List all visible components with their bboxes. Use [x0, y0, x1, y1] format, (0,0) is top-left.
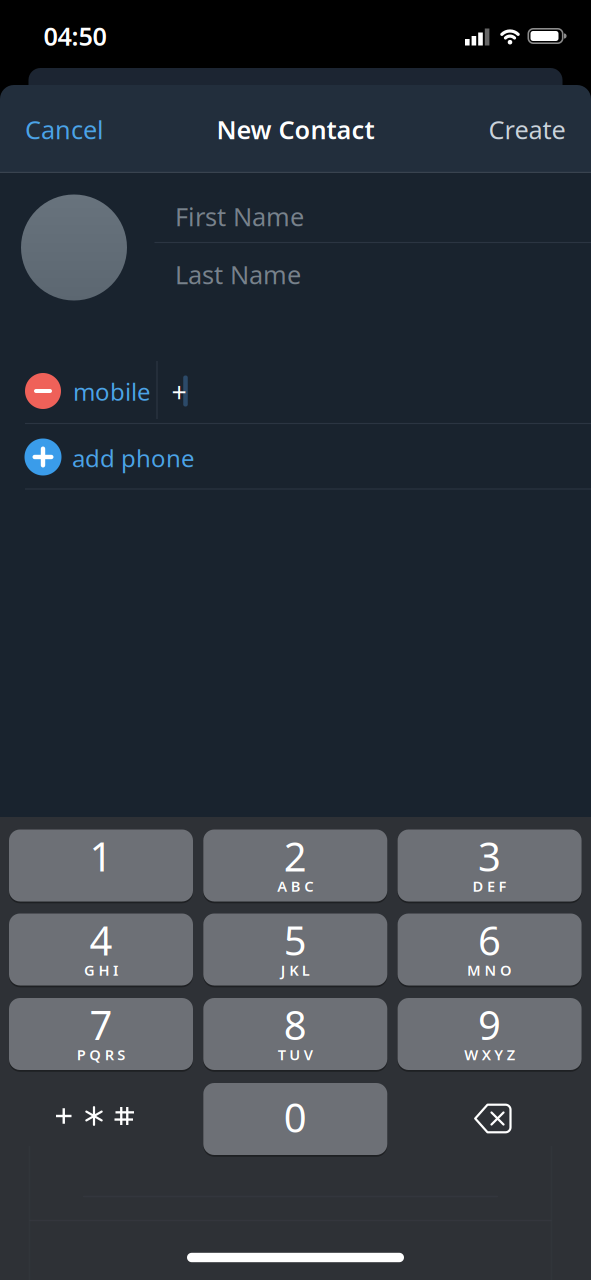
staticText: 5 [284, 913, 307, 966]
button[interactable]: 8 [203, 998, 387, 1072]
staticText: New Contact [216, 113, 374, 146]
staticText: 7 [89, 998, 112, 1051]
button[interactable]: add phone [0, 424, 591, 489]
button[interactable]: 9 [398, 998, 582, 1072]
staticText: 1 [89, 829, 112, 882]
staticText: GHI [84, 960, 118, 980]
staticText: Last Name [175, 258, 301, 291]
staticText: DEF [473, 876, 507, 896]
button[interactable]: Last Name [175, 241, 591, 307]
staticText: First Name [175, 200, 304, 233]
staticText: Cancel [25, 113, 104, 146]
button[interactable]: First Name [175, 182, 591, 250]
staticText: 8 [284, 998, 307, 1051]
button[interactable]: Create [445, 107, 565, 151]
staticText: + [171, 374, 186, 410]
staticText: 4 [89, 913, 112, 966]
staticText: 2 [284, 829, 307, 882]
staticText: Create [488, 113, 565, 146]
button[interactable]: 3 [398, 829, 582, 903]
staticText: TUV [278, 1045, 313, 1064]
staticText: mobile [73, 376, 151, 407]
button[interactable]: 1 [9, 829, 193, 903]
button[interactable]: Cancel [25, 107, 145, 151]
button[interactable]: 6 [398, 913, 582, 987]
button[interactable]: mobile [73, 369, 153, 413]
button[interactable]: Delete [474, 1103, 512, 1133]
staticText: 3 [478, 829, 501, 882]
staticText: add phone [72, 442, 195, 474]
button[interactable]: + [157, 360, 577, 422]
staticText: PQRS [77, 1045, 125, 1064]
button[interactable]: Set Photo [21, 194, 127, 300]
button[interactable]: Symbols [46, 1096, 146, 1136]
staticText: MNO [467, 960, 512, 980]
button[interactable]: 0 [203, 1083, 387, 1157]
button[interactable]: 4 [9, 913, 193, 987]
button[interactable]: 7 [9, 998, 193, 1072]
staticText: JKL [281, 960, 310, 980]
staticText: 04:50 [43, 19, 106, 53]
staticText: WXYZ [464, 1045, 515, 1064]
staticText: 0 [284, 1090, 307, 1143]
button[interactable]: Remove phone [25, 373, 61, 409]
staticText: ABC [277, 876, 313, 896]
staticText: 6 [478, 913, 501, 966]
button[interactable]: 5 [203, 913, 387, 987]
button[interactable]: 2 [203, 829, 387, 903]
staticText: 9 [478, 998, 501, 1051]
